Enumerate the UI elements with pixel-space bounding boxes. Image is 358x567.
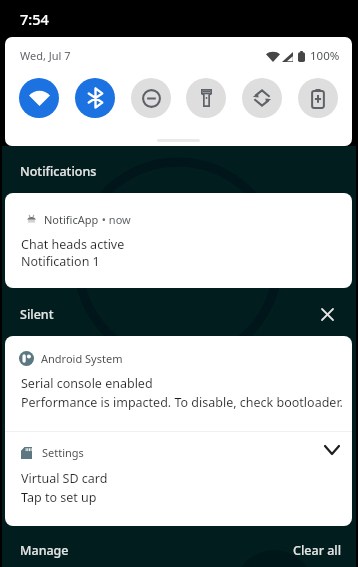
staticText: Android System [41,351,123,366]
button[interactable]: Android System [5,336,352,431]
staticText: Virtual SD card [21,470,108,487]
button[interactable]: Do Not Disturb [131,78,171,118]
staticText: Wed, Jul 7 [20,48,71,63]
staticText: Clear all [293,542,342,559]
button[interactable]: Bluetooth [75,78,115,118]
staticText: Manage [20,542,69,559]
staticText: 100% [310,48,340,64]
button[interactable]: Flashlight [186,78,226,118]
staticText: Notification 1 [21,253,100,270]
button[interactable]: Clear silent notifications [315,302,339,326]
staticText: Notifications [20,163,97,180]
button[interactable]: Auto-rotate [242,78,282,118]
staticText: Settings [42,445,84,460]
staticText: Silent [20,306,54,323]
button[interactable]: Wi-Fi [19,78,59,118]
staticText: Tap to set up [21,489,97,506]
staticText: 7:54 [20,9,49,29]
button[interactable]: Battery Saver [298,78,338,118]
button[interactable]: Manage [14,538,75,563]
staticText: • now [99,212,131,227]
button[interactable]: NotificApp [5,193,352,288]
staticText: Serial console enabled [21,375,153,392]
staticText: Chat heads active [21,236,125,253]
button[interactable]: Settings [5,432,352,526]
staticText: NotificApp [44,212,99,227]
staticText: Performance is impacted. To disable, che… [21,394,343,411]
button[interactable]: Clear all [287,538,348,563]
